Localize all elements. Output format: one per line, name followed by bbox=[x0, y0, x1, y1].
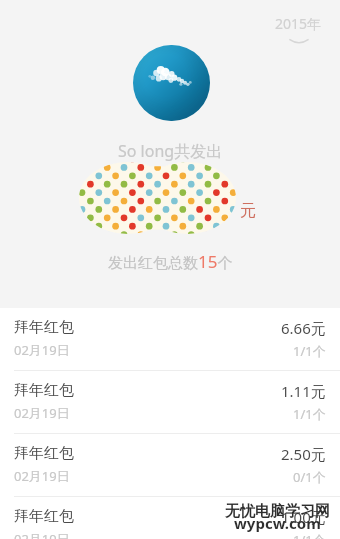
staticText: 02月19日 bbox=[14, 341, 70, 359]
staticText: 2015年 bbox=[275, 14, 322, 33]
staticText: 02月19日 bbox=[14, 530, 70, 539]
staticText: 6.66元 bbox=[281, 318, 326, 338]
staticText: 拜年红包 bbox=[14, 507, 74, 526]
button[interactable]: 拜年红包 bbox=[0, 497, 340, 539]
staticText: 发出红包总数15个 bbox=[108, 250, 233, 273]
staticText: 1/1个 bbox=[293, 405, 326, 423]
staticText: 1.00元 bbox=[281, 507, 326, 527]
button[interactable]: Select year 2015 bbox=[275, 14, 322, 45]
staticText: 0/1个 bbox=[293, 468, 326, 486]
staticText: 拜年红包 bbox=[14, 318, 74, 337]
button[interactable]: 拜年红包 bbox=[0, 434, 340, 496]
staticText: 1/1个 bbox=[293, 342, 326, 360]
button[interactable]: 拜年红包 bbox=[0, 371, 340, 433]
staticText: wypcw.com bbox=[234, 513, 321, 533]
staticText: So long共发出 bbox=[118, 140, 223, 162]
staticText: 02月19日 bbox=[14, 467, 70, 485]
button[interactable]: 拜年红包 bbox=[0, 308, 340, 370]
staticText: 1188.88 bbox=[84, 175, 231, 229]
staticText: 2.50元 bbox=[281, 444, 326, 464]
staticText: 无忧电脑学习网 bbox=[225, 502, 330, 521]
staticText: 拜年红包 bbox=[14, 381, 74, 400]
staticText: 元 bbox=[240, 201, 256, 221]
staticText: 02月19日 bbox=[14, 404, 70, 422]
staticText: 1.11元 bbox=[281, 381, 326, 401]
staticText: 1/1个 bbox=[293, 531, 326, 539]
staticText: 拜年红包 bbox=[14, 444, 74, 463]
button[interactable]: Profile avatar bbox=[133, 45, 210, 121]
